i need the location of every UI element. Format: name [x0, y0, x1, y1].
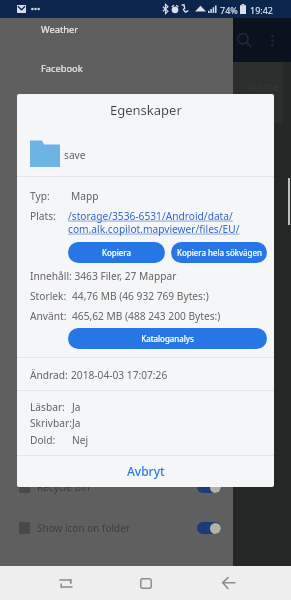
staticText: 19:42 — [250, 4, 274, 16]
button[interactable]: Home — [122, 566, 170, 600]
staticText: Recycle Bin — [37, 480, 90, 494]
staticText: Ja — [72, 416, 81, 430]
button[interactable]: Search — [229, 25, 259, 55]
button[interactable]: Kataloganalys — [68, 328, 267, 349]
button[interactable]: Avbryt — [17, 455, 274, 487]
staticText: Facebook — [41, 62, 83, 75]
staticText: com.alk.copilot.mapviewer/files/EU/ — [68, 222, 240, 236]
button[interactable]: Kopiera — [68, 242, 165, 263]
button[interactable]: Recents — [42, 566, 89, 600]
staticText: Skrivbar: — [30, 416, 72, 430]
staticText: save — [64, 148, 86, 162]
staticText: /storage/3536-6531/Android/data/ — [68, 209, 233, 223]
staticText: 2018-04-03 17:07:26 — [71, 368, 168, 382]
button[interactable]: Kopiera hela sökvägen — [171, 242, 267, 263]
staticText: Storlek: — [30, 289, 67, 303]
staticText: Läsbar: — [30, 400, 65, 414]
staticText: Show icon on folder — [37, 521, 131, 535]
staticText: Weather — [41, 23, 79, 36]
staticText: Kopiera hela sökvägen — [177, 247, 262, 258]
staticText: Avbryt — [127, 463, 165, 479]
staticText: Typ: — [30, 189, 50, 203]
button[interactable]: More options — [259, 27, 285, 53]
staticText: Ändrad: — [30, 368, 68, 382]
button[interactable]: Recycle Bin — [19, 474, 221, 500]
staticText: Dold: — [30, 433, 56, 447]
staticText: Mapp — [71, 189, 99, 203]
staticText: 74% — [220, 4, 238, 16]
staticText: Innehåll: 3463 Filer, 27 Mappar — [30, 269, 177, 283]
button[interactable]: Back — [204, 566, 252, 600]
staticText: Använt: — [30, 309, 67, 323]
staticText: Plats: — [30, 209, 56, 223]
staticText: Ja — [72, 400, 81, 414]
button[interactable]: Show icon on folder — [19, 515, 221, 541]
staticText: Nej — [72, 433, 89, 447]
staticText: 44,76 MB (46 932 769 Bytes:) — [72, 289, 209, 303]
staticText: Kataloganalys — [141, 333, 194, 344]
staticText: Egenskaper — [110, 101, 182, 119]
staticText: Kopiera — [102, 247, 131, 258]
staticText: 465,62 MB (488 243 200 Bytes:) — [72, 309, 221, 323]
